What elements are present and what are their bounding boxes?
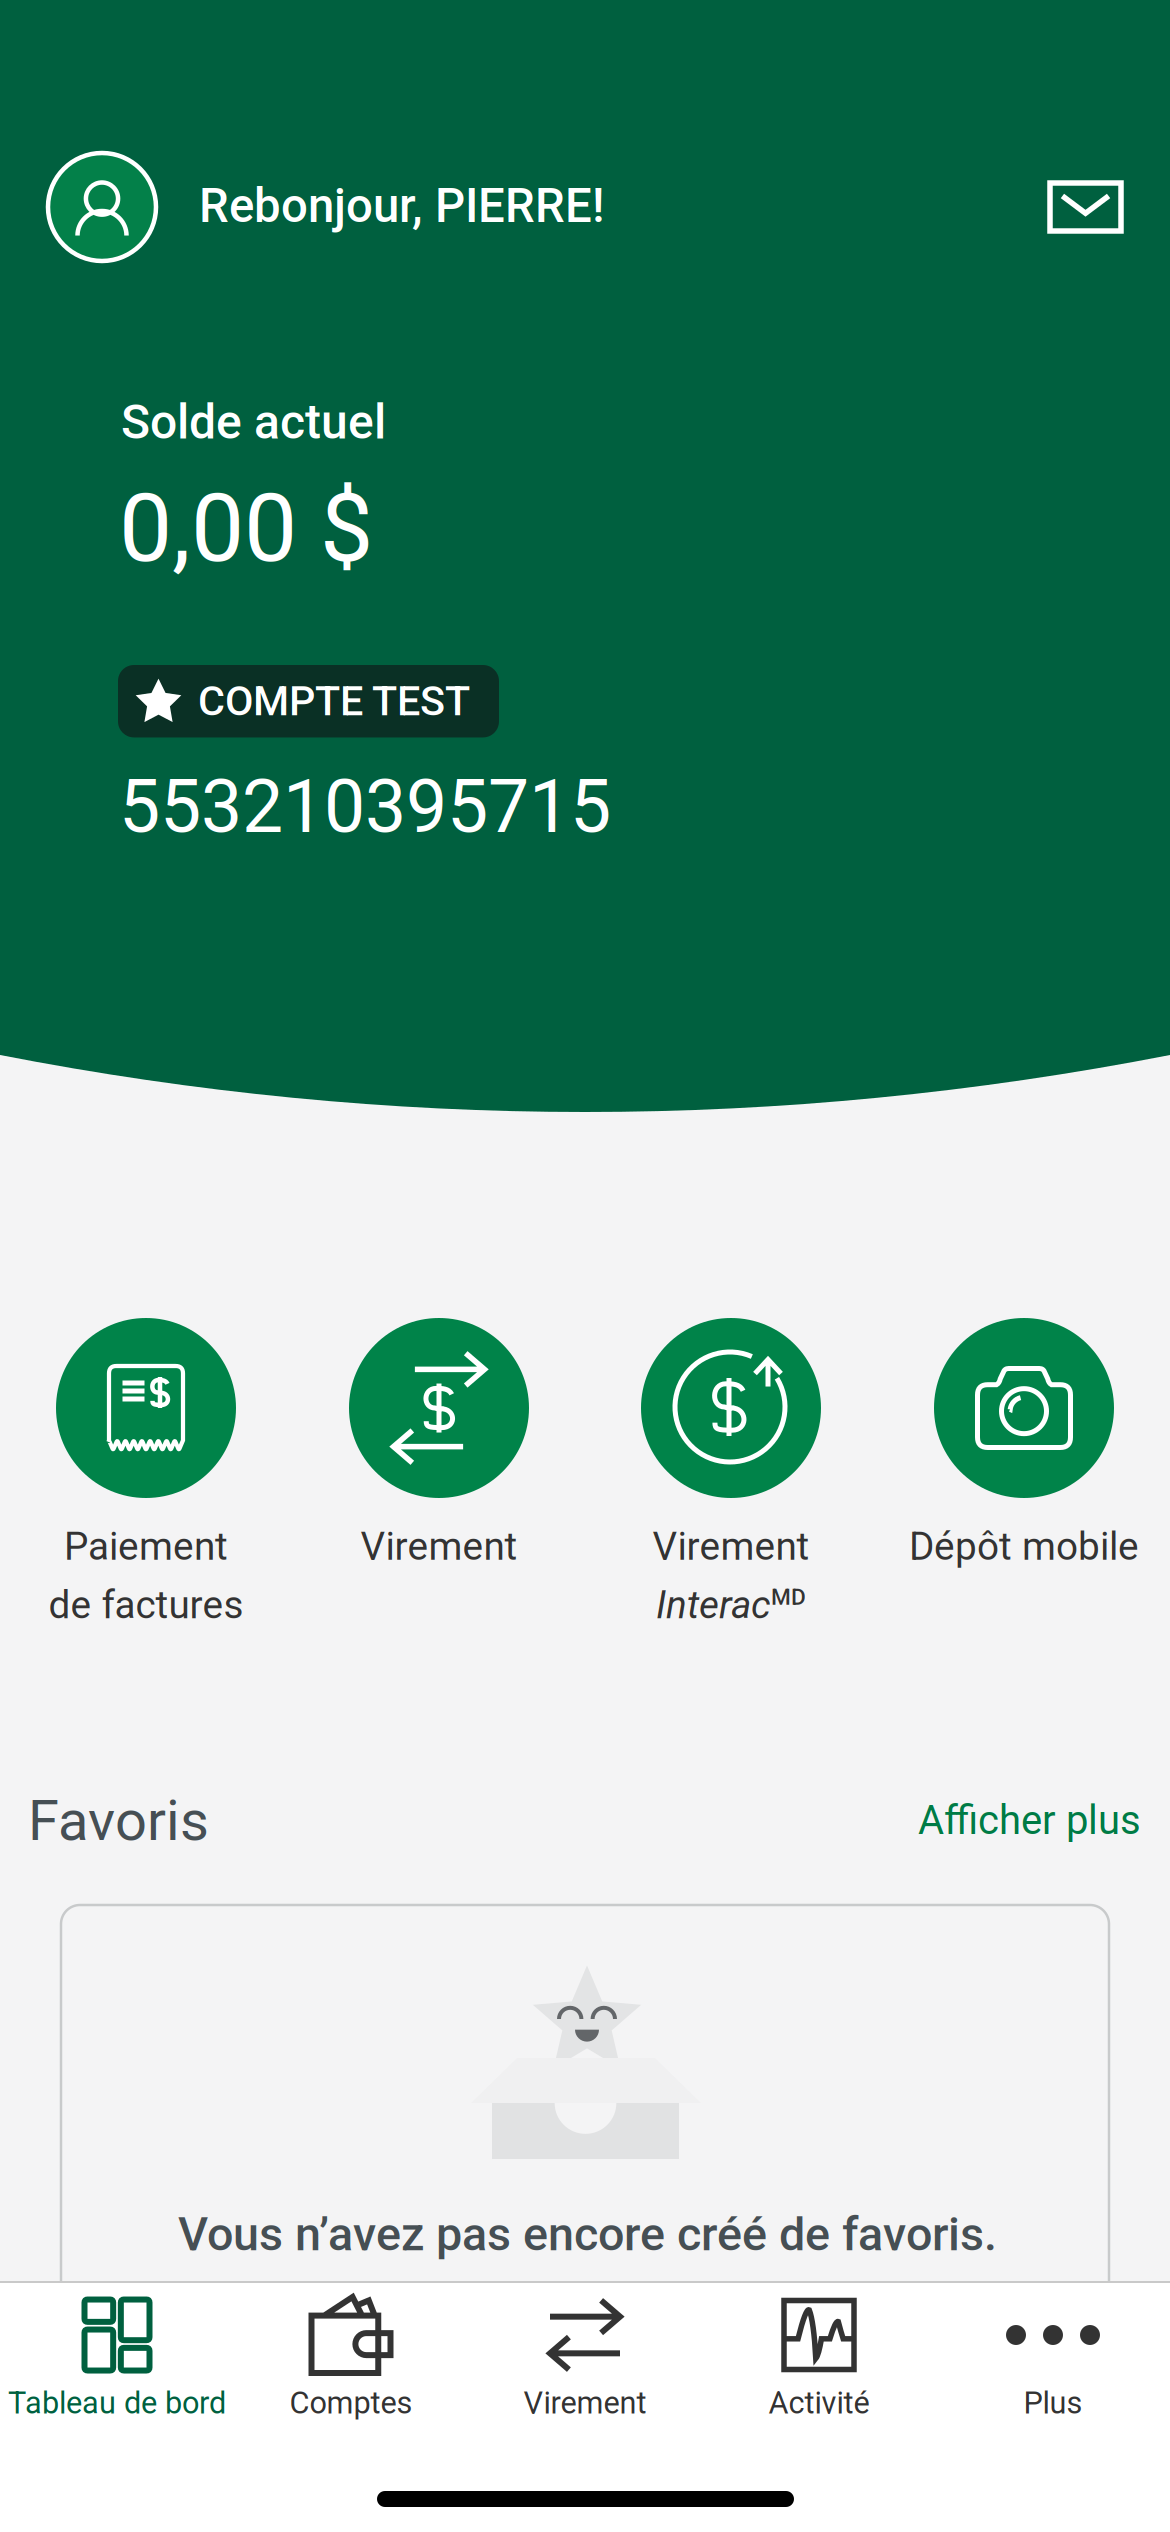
button[interactable]: Plus [936,2295,1170,2435]
staticText: Solde actuel [121,394,386,450]
staticText: Vous n’avez pas encore créé de favoris. [178,2207,997,2262]
button[interactable]: Messages [1024,157,1147,257]
staticText: Comptes [289,2385,412,2421]
staticText: 553210395715 [119,764,611,850]
staticText: COMPTE TEST [198,677,470,725]
button[interactable]: Virement [468,2295,702,2435]
staticText: Favoris [28,1788,209,1854]
staticText: Virement [652,1524,809,1569]
staticText: de factures [48,1582,243,1628]
staticText: Tableau de bord [8,2385,226,2421]
staticText: Plus [1023,2385,1082,2421]
button[interactable]: Virement [588,1318,874,1718]
button[interactable]: Activité [702,2295,936,2435]
staticText: Virement [360,1524,517,1569]
button[interactable]: Tableau de bord [0,2295,234,2435]
button[interactable]: Paiement [3,1318,289,1718]
staticText: Dépôt mobile [909,1524,1139,1569]
button[interactable]: Comptes [234,2295,468,2435]
button[interactable]: Afficher plus [908,1791,1151,1850]
staticText: Activité [768,2385,869,2421]
staticText: Virement [523,2385,646,2421]
staticText: Rebonjour, PIERRE! [199,178,605,233]
button[interactable]: Dépôt mobile [881,1318,1167,1718]
button[interactable]: Virement [296,1318,582,1718]
staticText: MD [771,1584,806,1610]
staticText: Afficher plus [918,1797,1141,1844]
staticText: Interac [656,1582,771,1628]
staticText: Paiement [64,1524,228,1569]
staticText: 0,00 $ [119,473,373,584]
button[interactable]: Profil [48,153,156,261]
